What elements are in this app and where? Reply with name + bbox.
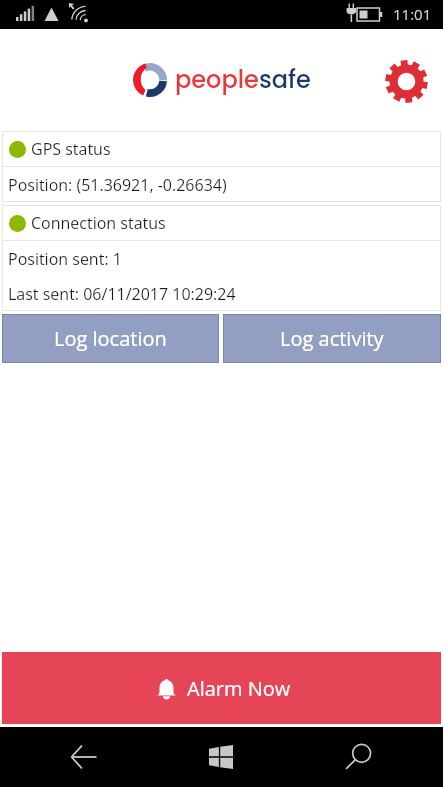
button[interactable]: Settings xyxy=(384,59,428,103)
staticText: Last sent: 06/11/2017 10:29:24 xyxy=(8,283,236,305)
staticText: Position sent: 1 xyxy=(8,248,122,270)
button[interactable]: Last sent: 06/11/2017 10:29:24 xyxy=(2,276,441,311)
button[interactable]: Search xyxy=(295,727,443,787)
staticText: Alarm Now xyxy=(187,675,291,702)
button[interactable]: Position: (51.36921, -0.26634) xyxy=(2,167,441,202)
staticText: Log location xyxy=(54,325,167,352)
button[interactable]: Alarm Now xyxy=(2,652,441,724)
staticText: Log activity xyxy=(280,325,384,352)
button[interactable]: Position sent: 1 xyxy=(2,241,441,276)
button[interactable]: GPS status xyxy=(2,131,441,166)
button[interactable]: Back xyxy=(0,727,147,787)
staticText: safe xyxy=(259,63,311,97)
button[interactable]: Connection status xyxy=(2,205,441,240)
staticText: 11:01 xyxy=(393,4,432,24)
staticText: Position: (51.36921, -0.26634) xyxy=(8,174,227,196)
staticText: Connection status xyxy=(31,212,166,234)
button[interactable]: Log activity xyxy=(223,314,441,363)
staticText: people xyxy=(175,63,259,97)
button[interactable]: Log location xyxy=(2,314,219,363)
button[interactable]: Home xyxy=(147,727,295,787)
staticText: GPS status xyxy=(31,138,111,160)
